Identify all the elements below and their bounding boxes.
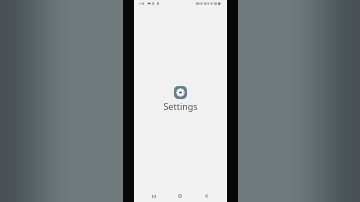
button[interactable]: Recent apps	[147, 189, 161, 202]
staticText: Settings	[163, 100, 198, 112]
button[interactable]: Home	[173, 189, 187, 202]
button[interactable]: Back	[199, 189, 213, 202]
button[interactable]: Settings	[174, 86, 187, 99]
